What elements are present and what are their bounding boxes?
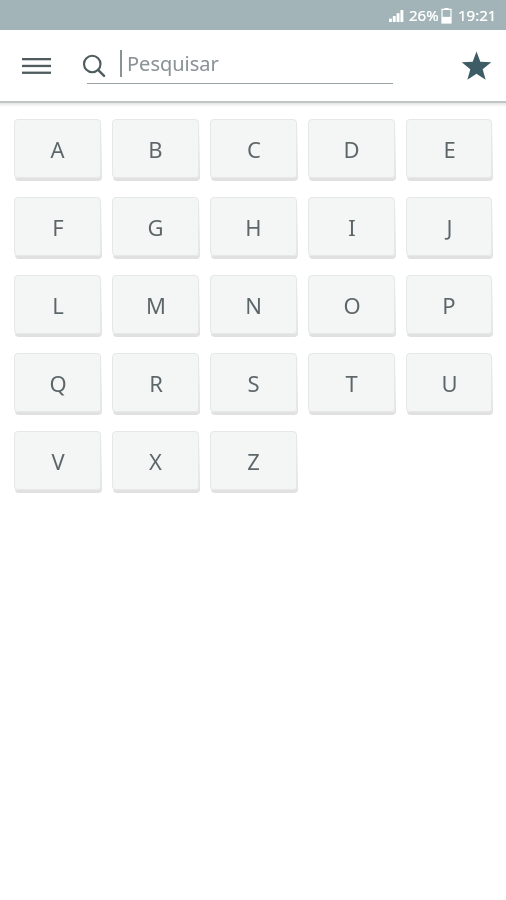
staticText: Z [247, 446, 260, 476]
button[interactable]: H [210, 197, 297, 256]
staticText: T [345, 368, 358, 398]
button[interactable]: Favorites [452, 42, 500, 90]
button[interactable]: D [308, 119, 395, 178]
staticText: O [343, 290, 361, 320]
button[interactable]: S [210, 353, 297, 412]
button[interactable]: I [308, 197, 395, 256]
button[interactable]: P [406, 275, 492, 334]
staticText: I [348, 212, 356, 242]
button[interactable]: B [112, 119, 199, 178]
button[interactable]: Q [14, 353, 101, 412]
staticText: J [446, 212, 453, 242]
staticText: S [247, 368, 260, 398]
staticText: H [245, 212, 262, 242]
button[interactable]: G [112, 197, 199, 256]
button[interactable]: Z [210, 431, 297, 490]
staticText: 19:21 [458, 5, 497, 25]
staticText: Pesquisar [127, 50, 219, 77]
button[interactable]: M [112, 275, 199, 334]
staticText: L [52, 290, 64, 320]
staticText: G [147, 212, 164, 242]
staticText: E [443, 134, 456, 164]
button[interactable]: O [308, 275, 395, 334]
staticText: 26% [409, 5, 439, 25]
staticText: X [149, 446, 162, 476]
staticText: C [247, 134, 261, 164]
staticText: P [442, 290, 456, 320]
staticText: F [52, 212, 64, 242]
button[interactable]: A [14, 119, 101, 178]
button[interactable]: C [210, 119, 297, 178]
staticText: Q [49, 368, 67, 398]
button[interactable]: X [112, 431, 199, 490]
button[interactable]: Pesquisar [120, 41, 426, 91]
staticText: U [441, 368, 458, 398]
staticText: A [50, 134, 65, 164]
button[interactable]: Search [72, 44, 116, 88]
staticText: N [245, 290, 262, 320]
button[interactable]: R [112, 353, 199, 412]
button[interactable]: J [406, 197, 492, 256]
staticText: B [148, 134, 163, 164]
staticText: V [51, 446, 65, 476]
button[interactable]: V [14, 431, 101, 490]
button[interactable]: L [14, 275, 101, 334]
button[interactable]: T [308, 353, 395, 412]
button[interactable]: N [210, 275, 297, 334]
staticText: M [146, 290, 166, 320]
button[interactable]: Menu [12, 42, 60, 90]
staticText: D [343, 134, 360, 164]
button[interactable]: U [406, 353, 492, 412]
staticText: R [149, 368, 163, 398]
button[interactable]: F [14, 197, 101, 256]
button[interactable]: E [406, 119, 492, 178]
